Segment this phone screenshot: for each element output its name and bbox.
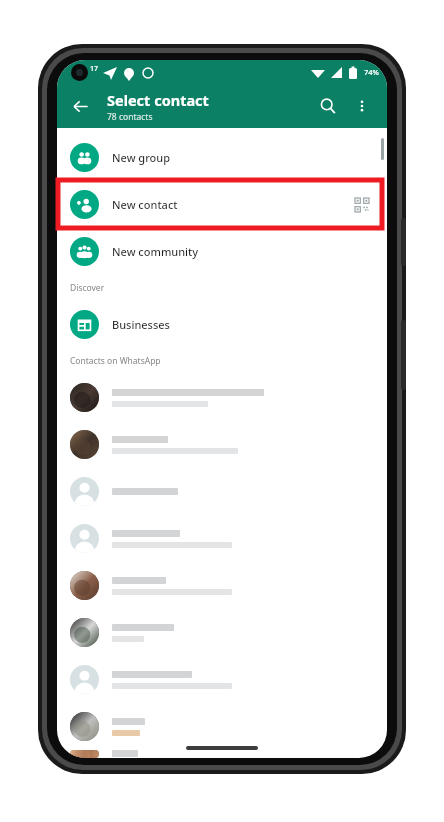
button[interactable]: Businesses bbox=[57, 301, 387, 348]
button[interactable]: New community bbox=[57, 228, 387, 275]
button[interactable] bbox=[57, 421, 387, 468]
button[interactable]: More options bbox=[345, 89, 379, 123]
button[interactable] bbox=[57, 656, 387, 703]
button[interactable]: Search bbox=[311, 89, 345, 123]
staticText: 17 bbox=[90, 64, 99, 74]
staticText: Businesses bbox=[112, 317, 170, 332]
staticText: Discover bbox=[70, 282, 105, 294]
staticText: New contact bbox=[112, 197, 178, 212]
button[interactable] bbox=[57, 374, 387, 421]
staticText: Contacts on WhatsApp bbox=[70, 355, 161, 367]
staticText: New group bbox=[112, 150, 171, 165]
button[interactable]: Back bbox=[63, 89, 97, 123]
staticText: New community bbox=[112, 244, 199, 259]
button[interactable] bbox=[57, 750, 387, 758]
button[interactable] bbox=[57, 468, 387, 515]
staticText: Select contact bbox=[107, 90, 209, 110]
button[interactable]: New contact bbox=[57, 181, 387, 228]
button[interactable]: New group bbox=[57, 134, 387, 181]
staticText: 78 contacts bbox=[107, 111, 153, 123]
button[interactable] bbox=[57, 515, 387, 562]
button[interactable]: Scan QR code bbox=[351, 194, 373, 216]
button[interactable] bbox=[57, 609, 387, 656]
button[interactable] bbox=[57, 562, 387, 609]
staticText: 74% bbox=[364, 67, 379, 77]
button[interactable] bbox=[57, 703, 387, 750]
